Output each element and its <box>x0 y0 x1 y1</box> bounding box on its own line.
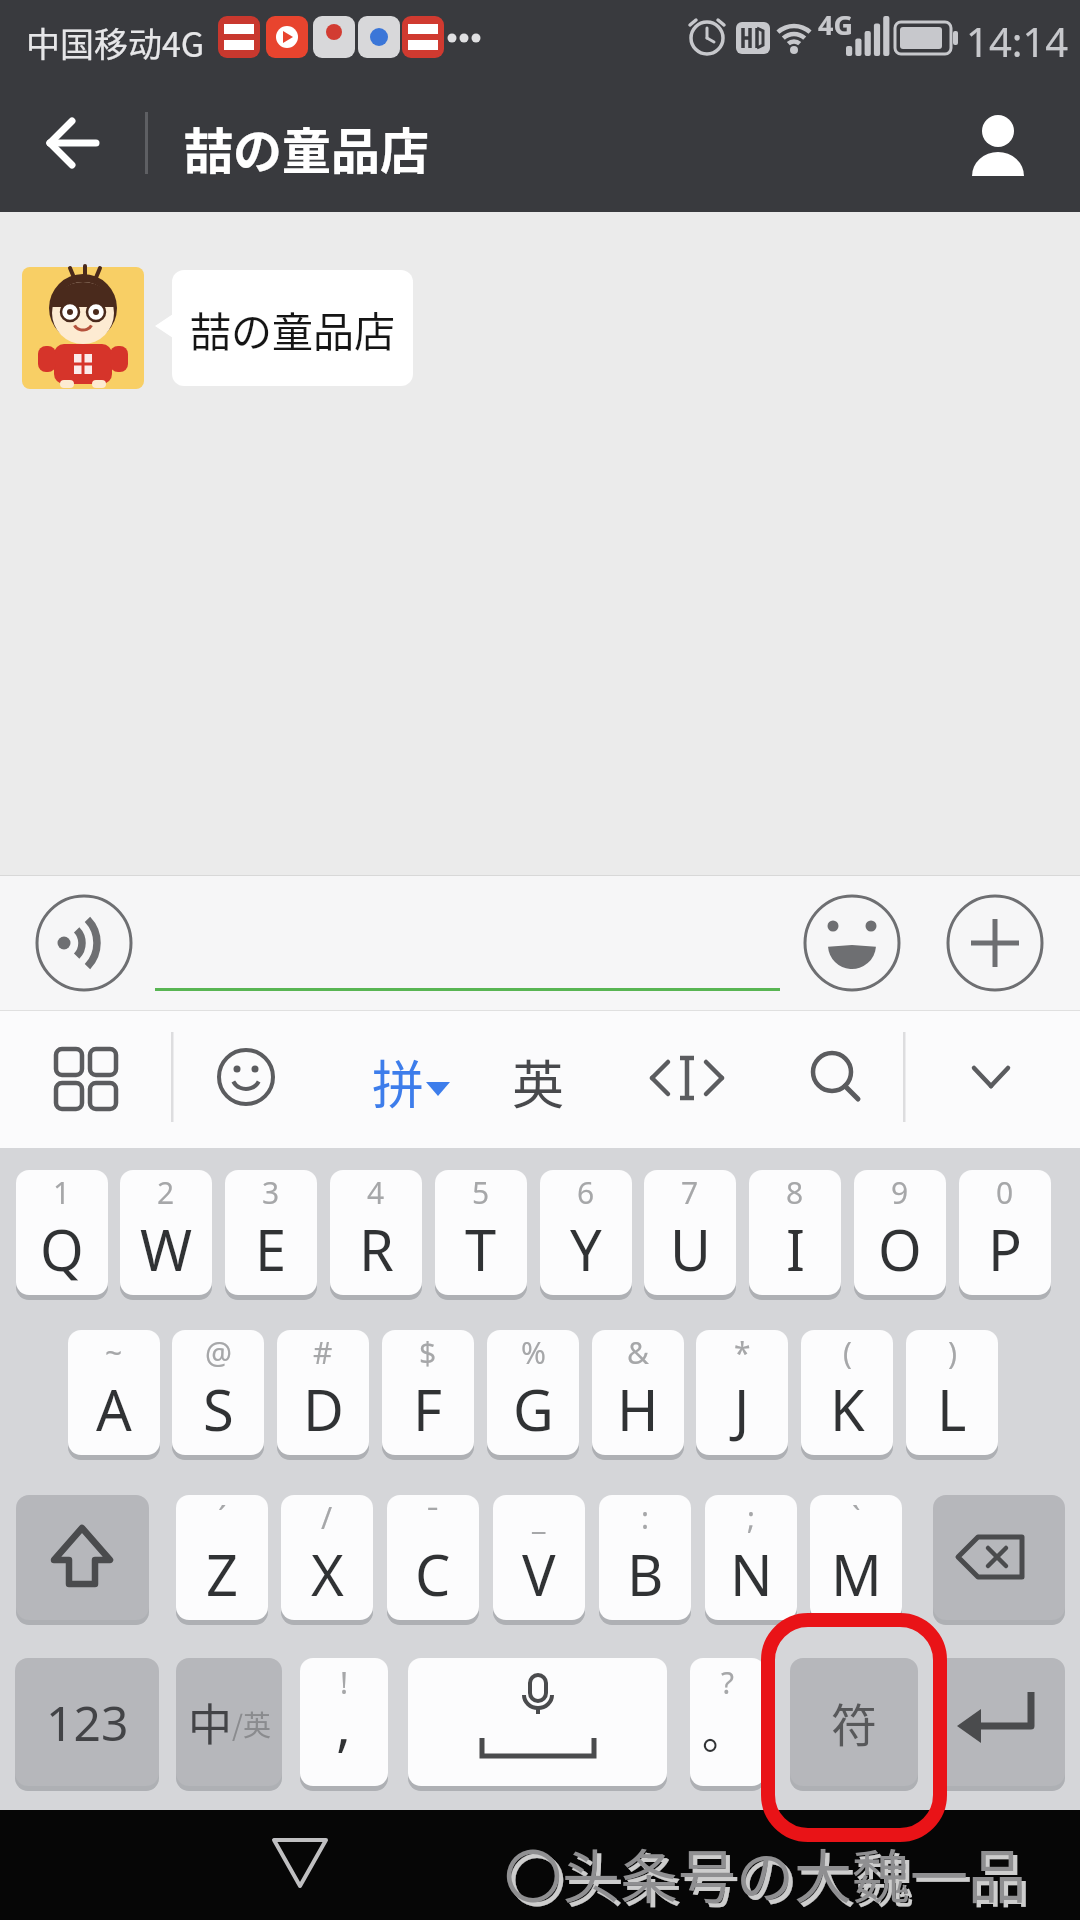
button[interactable]: 喆の童品店 <box>172 270 413 386</box>
button[interactable]: ; <box>705 1495 797 1620</box>
button[interactable]: 4 <box>330 1170 422 1295</box>
staticText: 喆の童品店 <box>190 299 395 358</box>
staticText: ? <box>721 1662 735 1703</box>
staticText: : <box>641 1497 650 1538</box>
staticText: ! <box>340 1662 349 1703</box>
button[interactable]: # <box>277 1330 369 1455</box>
staticText: # <box>313 1332 333 1373</box>
staticText: 4 <box>367 1172 385 1213</box>
staticText: 喆の童品店 <box>184 112 430 183</box>
staticText: H <box>617 1371 659 1447</box>
staticText: W <box>140 1211 193 1287</box>
button[interactable]: ´ <box>176 1495 268 1620</box>
staticText: 6 <box>577 1172 595 1213</box>
staticText: R <box>359 1211 394 1287</box>
button[interactable]: ? <box>690 1658 765 1786</box>
staticText: / <box>321 1497 333 1538</box>
staticText: 拼 <box>372 1044 425 1119</box>
staticText: L <box>937 1371 967 1447</box>
button[interactable]: ! <box>300 1658 388 1786</box>
staticText: 符 <box>831 1689 877 1756</box>
staticText: , <box>336 1686 352 1762</box>
staticText: K <box>830 1371 865 1447</box>
staticText: ( <box>843 1332 852 1373</box>
staticText: 〇头条号の大魏一品 <box>508 1835 1031 1919</box>
staticText: Y <box>570 1211 602 1287</box>
staticText: G <box>513 1371 554 1447</box>
button[interactable] <box>933 1495 1065 1620</box>
staticText: $ <box>419 1332 437 1373</box>
staticText: 。 <box>702 1700 745 1761</box>
staticText: ` <box>852 1497 861 1538</box>
button[interactable]: * <box>696 1330 788 1455</box>
staticText: ´ <box>218 1497 227 1538</box>
staticText: S <box>203 1371 234 1447</box>
button[interactable]: 符 <box>790 1658 918 1786</box>
staticText: M <box>831 1536 882 1612</box>
button[interactable] <box>933 1658 1065 1786</box>
staticText: @ <box>205 1332 232 1373</box>
staticText: F <box>413 1371 443 1447</box>
staticText: 1 <box>53 1172 71 1213</box>
staticText: 7 <box>681 1172 699 1213</box>
button[interactable]: : <box>599 1495 691 1620</box>
button[interactable]: @ <box>172 1330 264 1455</box>
staticText: O <box>878 1211 922 1287</box>
staticText: 5 <box>472 1172 490 1213</box>
staticText: D <box>303 1371 344 1447</box>
button[interactable]: % <box>487 1330 579 1455</box>
staticText: 8 <box>786 1172 804 1213</box>
staticText: 〇头条号の大魏一品 <box>504 1831 1027 1915</box>
staticText: U <box>670 1211 711 1287</box>
staticText: % <box>521 1332 546 1373</box>
button[interactable]: 9 <box>854 1170 946 1295</box>
staticText: Q <box>40 1211 84 1287</box>
staticText: ˉ <box>427 1497 439 1538</box>
button[interactable]: & <box>592 1330 684 1455</box>
staticText: 4G <box>818 6 853 43</box>
staticText: 英 <box>512 1044 565 1119</box>
staticText: 14:14 <box>966 14 1069 68</box>
button[interactable] <box>408 1658 667 1786</box>
button[interactable]: 6 <box>540 1170 632 1295</box>
button[interactable]: 0 <box>959 1170 1051 1295</box>
staticText: ) <box>948 1332 957 1373</box>
staticText: 123 <box>46 1690 129 1755</box>
staticText: X <box>311 1536 344 1612</box>
button[interactable]: 中 <box>176 1658 282 1786</box>
staticText: 中国移动4G <box>26 18 205 67</box>
button[interactable]: _ <box>493 1495 585 1620</box>
staticText: Z <box>206 1536 239 1612</box>
staticText: * <box>734 1332 751 1373</box>
button[interactable]: ) <box>906 1330 998 1455</box>
staticText: J <box>734 1371 750 1447</box>
staticText: P <box>988 1211 1022 1287</box>
button[interactable]: ~ <box>68 1330 160 1455</box>
button[interactable] <box>16 1495 149 1620</box>
staticText: B <box>627 1536 664 1612</box>
staticText: T <box>465 1211 497 1287</box>
button[interactable]: 123 <box>15 1658 159 1786</box>
button[interactable]: $ <box>382 1330 474 1455</box>
staticText: 0 <box>996 1172 1014 1213</box>
button[interactable]: 5 <box>435 1170 527 1295</box>
staticText: ; <box>747 1497 756 1538</box>
button[interactable] <box>22 267 144 389</box>
staticText: 中 <box>188 1690 232 1754</box>
button[interactable]: 8 <box>749 1170 841 1295</box>
button[interactable]: 3 <box>225 1170 317 1295</box>
staticText: I <box>786 1211 805 1287</box>
staticText: 9 <box>891 1172 909 1213</box>
button[interactable]: ˉ <box>387 1495 479 1620</box>
button[interactable]: / <box>281 1495 373 1620</box>
button[interactable]: 1 <box>16 1170 108 1295</box>
staticText: E <box>255 1211 287 1287</box>
staticText: & <box>627 1332 649 1373</box>
staticText: 2 <box>157 1172 175 1213</box>
staticText: N <box>730 1536 773 1612</box>
button[interactable]: ( <box>801 1330 893 1455</box>
button[interactable]: 7 <box>644 1170 736 1295</box>
staticText: C <box>415 1536 451 1612</box>
button[interactable]: ` <box>810 1495 902 1620</box>
button[interactable]: 2 <box>120 1170 212 1295</box>
